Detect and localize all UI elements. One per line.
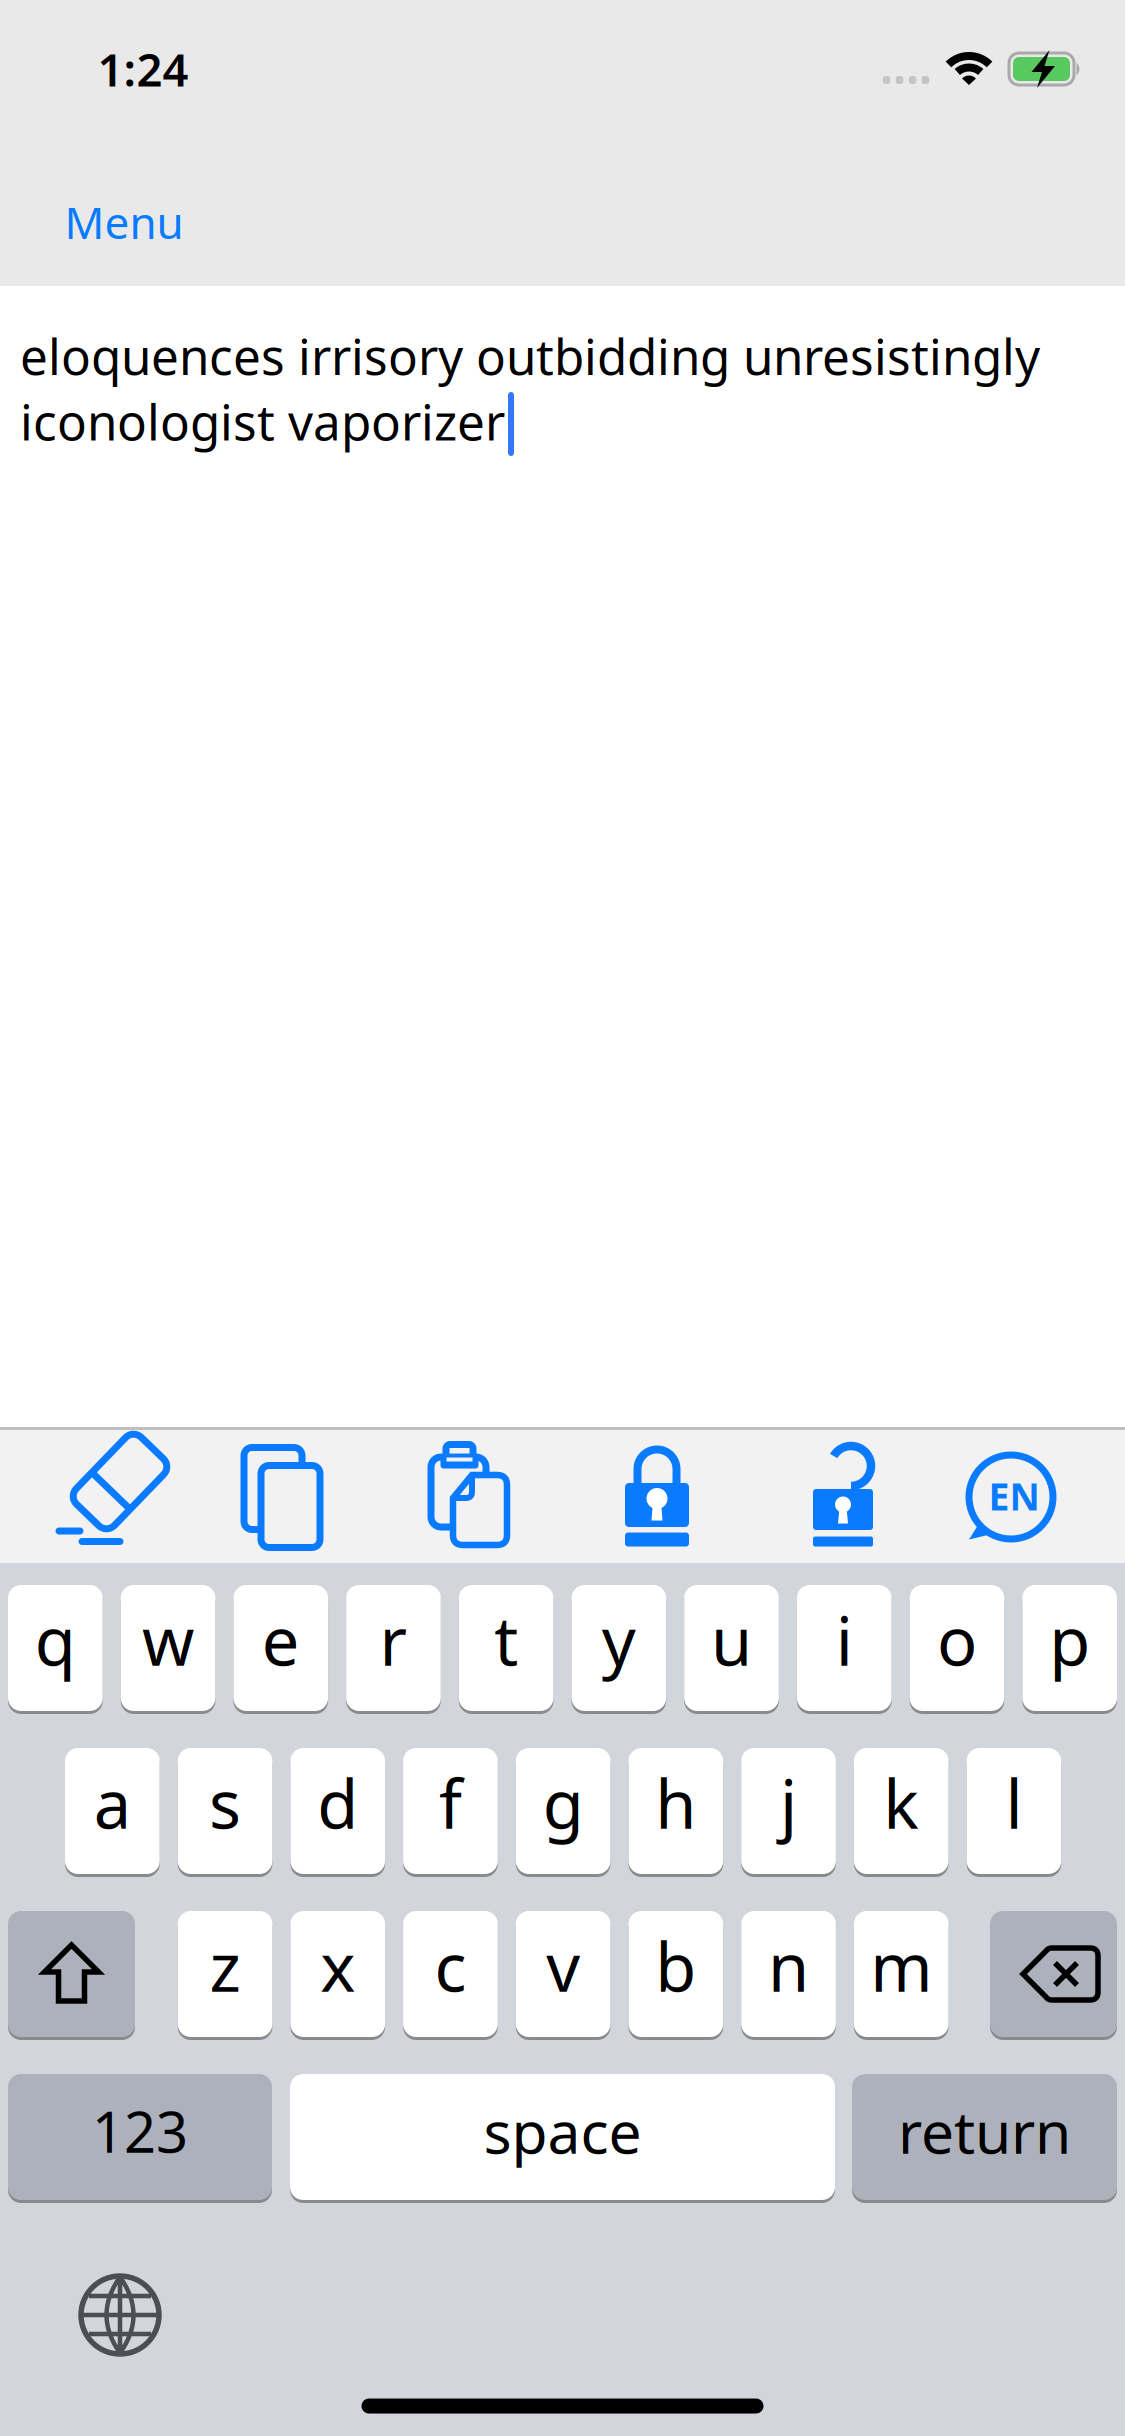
button[interactable]: t — [459, 1585, 553, 1711]
button[interactable]: Delete — [990, 1911, 1117, 2037]
button[interactable]: n — [741, 1911, 836, 2037]
button[interactable]: z — [178, 1911, 272, 2037]
button[interactable]: a — [65, 1748, 160, 1874]
staticText: z — [210, 1922, 241, 2010]
staticText: v — [546, 1922, 580, 2010]
button[interactable]: Lock — [587, 1429, 727, 1563]
button[interactable]: f — [403, 1748, 498, 1874]
button[interactable]: b — [628, 1911, 723, 2037]
button[interactable]: Language — [942, 1429, 1082, 1563]
button[interactable]: d — [290, 1748, 385, 1874]
button[interactable]: y — [571, 1585, 666, 1711]
button[interactable]: x — [290, 1911, 385, 2037]
button[interactable]: Unlock — [773, 1429, 913, 1563]
staticText: l — [1005, 1759, 1022, 1847]
staticText: t — [494, 1596, 518, 1684]
button[interactable]: e — [233, 1585, 328, 1711]
staticText: r — [379, 1596, 407, 1684]
button[interactable]: o — [910, 1585, 1004, 1711]
button[interactable]: r — [346, 1585, 441, 1711]
button[interactable]: l — [967, 1748, 1061, 1874]
staticText: n — [768, 1922, 809, 2010]
staticText: s — [209, 1759, 241, 1847]
button[interactable]: Numbers — [8, 2074, 272, 2200]
staticText: d — [317, 1759, 358, 1847]
staticText: y — [602, 1596, 636, 1684]
staticText: j — [780, 1759, 797, 1847]
button[interactable]: c — [403, 1911, 498, 2037]
staticText: h — [655, 1759, 696, 1847]
staticText: k — [883, 1759, 919, 1847]
staticText: EN — [988, 1471, 1039, 1521]
staticText: w — [142, 1596, 194, 1684]
button[interactable]: Erase — [40, 1429, 180, 1563]
button[interactable]: Shift — [8, 1911, 135, 2037]
staticText: return — [898, 2092, 1071, 2170]
button[interactable]: v — [516, 1911, 610, 2037]
staticText: i — [836, 1596, 853, 1684]
staticText: o — [937, 1596, 977, 1684]
staticText: b — [655, 1922, 696, 2010]
staticText: x — [320, 1922, 355, 2010]
staticText: g — [543, 1759, 584, 1847]
button[interactable]: u — [684, 1585, 779, 1711]
button[interactable]: j — [741, 1748, 836, 1874]
button[interactable]: s — [178, 1748, 272, 1874]
staticText: c — [434, 1922, 466, 2010]
button[interactable]: h — [628, 1748, 723, 1874]
button[interactable]: m — [854, 1911, 949, 2037]
staticText: Menu — [64, 193, 183, 251]
staticText: 123 — [92, 2094, 188, 2168]
staticText: 1:24 — [97, 39, 188, 99]
staticText: u — [711, 1596, 752, 1684]
staticText: q — [35, 1596, 76, 1684]
staticText: space — [483, 2092, 641, 2170]
button[interactable]: k — [854, 1748, 949, 1874]
staticText: a — [94, 1759, 131, 1847]
button[interactable]: i — [797, 1585, 892, 1711]
button[interactable]: space — [290, 2074, 835, 2200]
button[interactable]: Menu — [64, 193, 183, 251]
staticText: m — [870, 1922, 932, 2010]
button[interactable]: q — [8, 1585, 103, 1711]
button[interactable]: Copy — [210, 1429, 350, 1563]
button[interactable]: Paste — [400, 1429, 540, 1563]
button[interactable]: return — [852, 2074, 1117, 2200]
button[interactable]: w — [121, 1585, 215, 1711]
button[interactable]: Next keyboard — [81, 2276, 159, 2354]
staticText: e — [262, 1596, 300, 1684]
staticText: f — [439, 1759, 462, 1847]
staticText: eloquences irrisory outbidding unresisti… — [20, 323, 1040, 454]
staticText: p — [1049, 1596, 1090, 1684]
button[interactable]: p — [1022, 1585, 1117, 1711]
button[interactable]: g — [516, 1748, 610, 1874]
